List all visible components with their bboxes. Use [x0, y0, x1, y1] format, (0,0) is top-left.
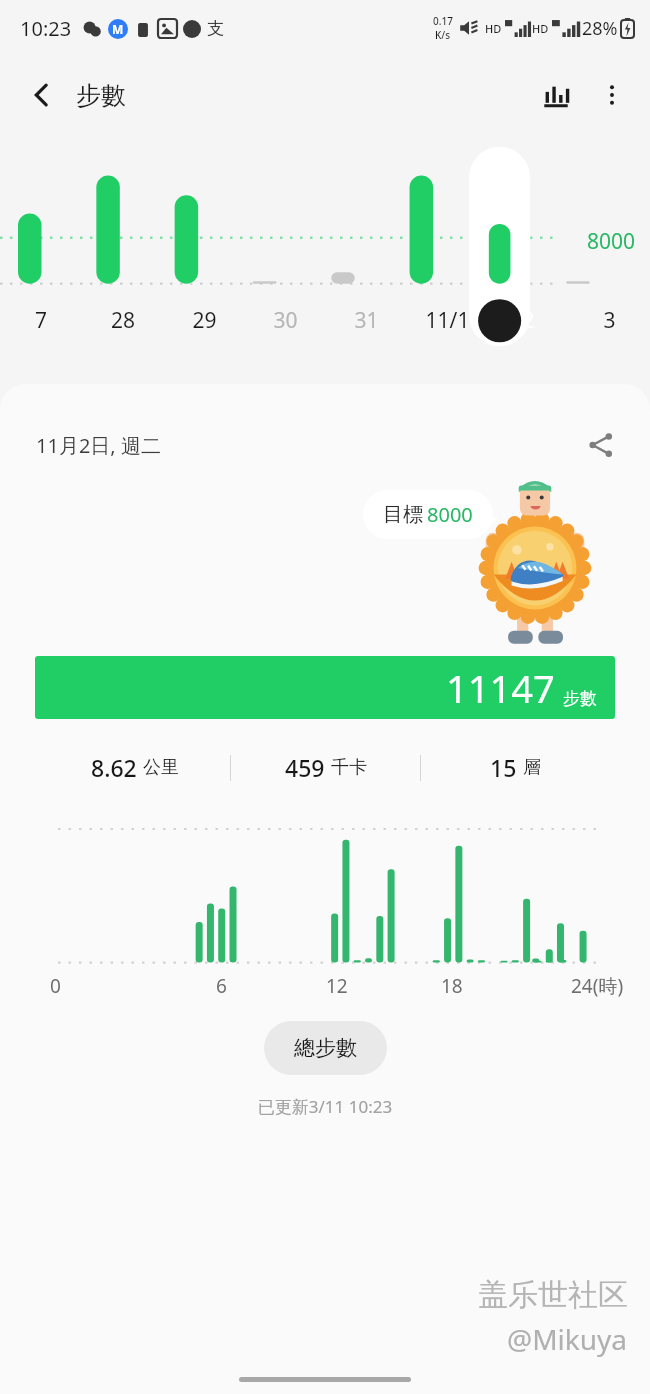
staticText: 目標 — [383, 502, 423, 527]
button[interactable]: 8.62 — [40, 752, 230, 783]
staticText: 0 — [50, 973, 61, 999]
staticText: 11147 — [446, 662, 555, 714]
staticText: HD — [532, 21, 549, 36]
staticText: 459 — [285, 752, 325, 783]
button[interactable]: 11147 — [35, 656, 615, 719]
staticText: 18 — [441, 973, 463, 999]
button[interactable]: 15 — [421, 752, 610, 783]
staticText: HD — [485, 21, 502, 36]
staticText: 0.17 — [433, 14, 453, 28]
staticText: 28% — [582, 16, 618, 41]
staticText: 8.62 — [91, 752, 137, 783]
staticText: 8000 — [427, 501, 473, 528]
button[interactable]: Share — [574, 418, 628, 472]
staticText: K/s — [435, 28, 451, 42]
staticText: 29 — [164, 306, 245, 335]
button[interactable]: 31 — [326, 134, 407, 366]
staticText: 3 — [569, 306, 650, 335]
staticText: 總步數 — [294, 1035, 357, 1061]
staticText: 6 — [216, 973, 227, 999]
button[interactable]: 30 — [245, 134, 326, 366]
button[interactable]: 目標 — [383, 501, 473, 528]
staticText: @Mikuya — [507, 1320, 628, 1358]
staticText: 31 — [326, 306, 407, 335]
staticText: 30 — [245, 306, 326, 335]
staticText: M — [112, 21, 124, 37]
staticText: 15 — [490, 752, 517, 783]
button[interactable]: Chart — [528, 67, 584, 123]
staticText: 2 — [488, 306, 569, 335]
staticText: 千卡 — [331, 756, 367, 779]
button[interactable]: 29 — [164, 134, 245, 366]
button[interactable]: 11/1 — [407, 134, 488, 366]
button[interactable]: 2 — [488, 134, 569, 366]
button[interactable]: 7 — [0, 134, 82, 366]
staticText: 盖乐世社区 — [478, 1276, 628, 1314]
staticText: 11月2日, 週二 — [36, 432, 161, 459]
staticText: 層 — [523, 756, 541, 779]
staticText: 10:23 — [20, 15, 72, 42]
staticText: 11/1 — [407, 306, 488, 335]
staticText: 8000 — [587, 227, 636, 256]
staticText: 24(時) — [571, 973, 624, 999]
staticText: 公里 — [143, 756, 179, 779]
staticText: 12 — [326, 973, 348, 999]
button[interactable]: 總步數 — [264, 1021, 387, 1075]
button[interactable]: 459 — [231, 752, 420, 783]
staticText: 7 — [0, 306, 82, 335]
button[interactable]: 28 — [82, 134, 164, 366]
button[interactable]: Back — [14, 67, 70, 123]
staticText: 28 — [82, 306, 164, 335]
button[interactable]: More options — [584, 67, 640, 123]
staticText: 已更新3/11 10:23 — [0, 1095, 650, 1118]
staticText: 步數 — [76, 80, 126, 111]
button[interactable]: 3 — [569, 134, 650, 366]
staticText: 支 — [207, 18, 224, 39]
staticText: 步數 — [563, 688, 597, 709]
